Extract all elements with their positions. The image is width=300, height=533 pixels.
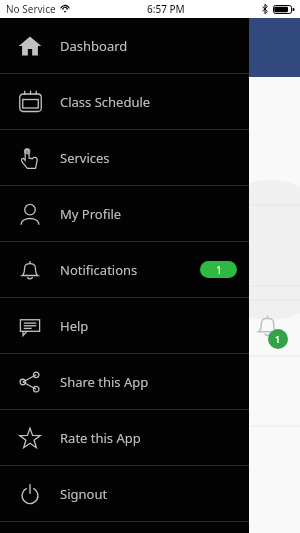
- staticText: Services: [60, 149, 110, 167]
- staticText: My Profile: [60, 205, 122, 223]
- button[interactable]: Rate this App: [0, 410, 249, 465]
- other: Signout: [0, 482, 60, 506]
- staticText: Notifications: [60, 261, 138, 279]
- other: Notifications: [0, 258, 60, 282]
- button[interactable]: Dashboard: [0, 18, 249, 73]
- staticText: 1: [275, 333, 281, 345]
- staticText: Help: [60, 317, 89, 335]
- staticText: No Service: [6, 2, 56, 16]
- staticText: Signout: [60, 485, 108, 503]
- staticText: 1: [216, 263, 222, 277]
- staticText: Dashboard: [60, 37, 128, 55]
- other: Dashboard: [0, 34, 60, 58]
- other: Rate this App: [0, 426, 60, 450]
- other: Services: [0, 146, 60, 170]
- button[interactable]: My Profile: [0, 186, 249, 241]
- staticText: Rate this App: [60, 429, 141, 447]
- staticText: 6:57 PM: [147, 2, 185, 16]
- other: Class Schedule: [0, 89, 60, 114]
- staticText: Share this App: [60, 373, 149, 391]
- button[interactable]: Signout: [0, 466, 249, 521]
- other: Help: [0, 314, 60, 338]
- button[interactable]: Class Schedule: [0, 74, 249, 129]
- other: My Profile: [0, 202, 60, 226]
- button[interactable]: Share this App: [0, 354, 249, 409]
- button[interactable]: Notifications: [0, 242, 249, 297]
- button[interactable]: Help: [0, 298, 249, 353]
- other: Share this App: [0, 370, 60, 394]
- staticText: Class Schedule: [60, 93, 151, 111]
- button[interactable]: Services: [0, 130, 249, 185]
